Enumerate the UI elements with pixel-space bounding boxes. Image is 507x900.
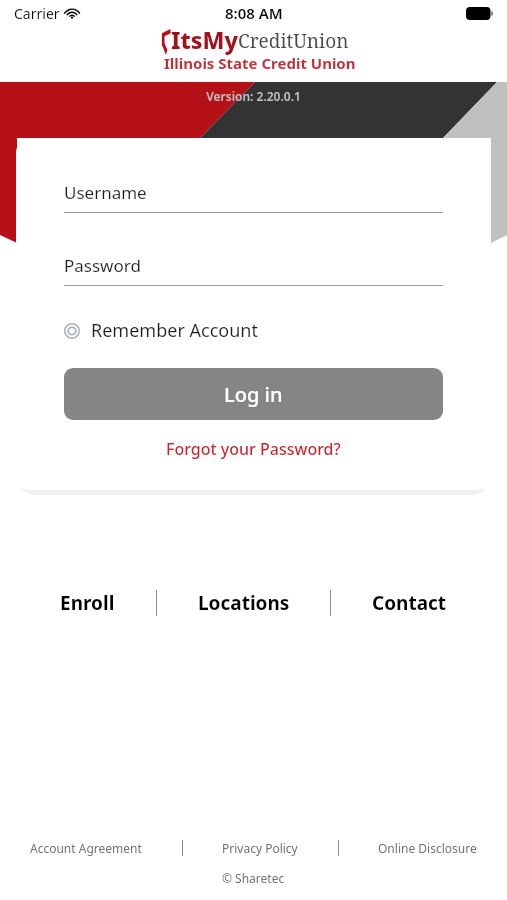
staticText: Contact [372,590,447,616]
staticText: Enroll [60,590,115,616]
button[interactable]: Remember Account [64,314,258,347]
staticText: Locations [198,590,290,616]
staticText: © Sharetec [222,870,285,886]
button[interactable]: Forgot your Password? [64,438,443,460]
button[interactable]: Privacy Policy [218,836,302,860]
staticText: Log in [224,381,283,408]
staticText: Password [64,254,141,277]
staticText: Username [64,181,147,204]
staticText: Version: 2.20.0.1 [0,88,507,104]
staticText: Forgot your Password? [166,438,341,460]
staticText: Illinois State Credit Union [164,53,356,73]
button[interactable]: Locations [192,584,296,622]
staticText: Online Disclosure [378,840,477,856]
button[interactable]: Online Disclosure [374,836,481,860]
staticText: ItsMy [171,24,238,55]
staticText: 8:08 AM [225,3,283,23]
staticText: Remember Account [91,318,258,343]
staticText: Carrier [14,4,60,23]
staticText: Privacy Policy [222,840,298,856]
button[interactable]: Enroll [54,584,121,622]
button[interactable]: Log in [64,368,443,420]
button[interactable]: Contact [366,584,453,622]
button[interactable]: Account Agreement [26,836,146,860]
staticText: Account Agreement [30,840,142,856]
staticText: CreditUnion [238,28,349,54]
